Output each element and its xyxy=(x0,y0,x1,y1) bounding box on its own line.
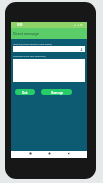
button[interactable]: Pick contact xyxy=(13,46,85,52)
button[interactable]: Chat xyxy=(15,89,35,95)
staticText: Share app xyxy=(51,91,63,94)
button[interactable]: Recents xyxy=(28,151,32,155)
staticText: Direct message xyxy=(13,31,39,36)
other: Pick contact xyxy=(80,48,83,51)
button[interactable]: Home xyxy=(47,151,51,155)
button[interactable]: Direct message xyxy=(11,28,87,39)
staticText: Chat xyxy=(22,91,28,94)
button[interactable]: Back xyxy=(66,151,70,155)
other: Status icons xyxy=(74,24,83,26)
staticText: Message to be sent (optional) xyxy=(13,54,46,57)
staticText: 9:30 xyxy=(17,23,23,27)
staticText: Phone (or with country code prefix) xyxy=(13,42,52,45)
button[interactable]: Share app xyxy=(41,89,72,95)
